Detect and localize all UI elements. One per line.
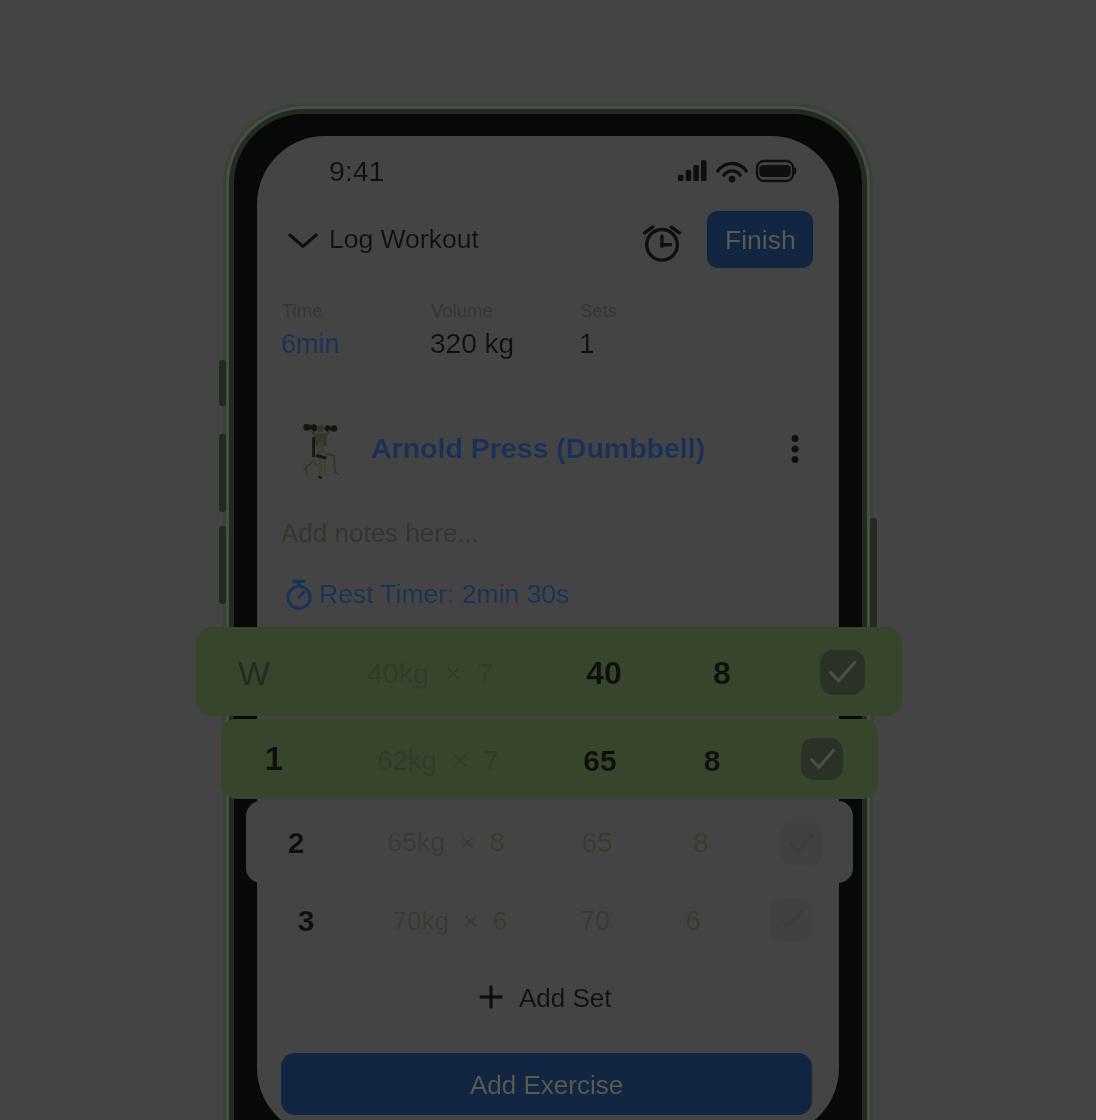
staticText: 320 kg [430,328,515,359]
staticText: 8 [667,655,777,691]
button[interactable] [246,801,853,883]
staticText: 8 [657,744,767,778]
staticText: 40 [549,655,659,691]
staticText: Add notes here... [281,518,480,547]
button[interactable] [221,719,878,799]
staticText: 6min [281,329,340,359]
staticText: 9:41 [329,155,385,187]
button[interactable]: Finish [707,211,813,268]
staticText: 70 [540,906,650,936]
button[interactable]: Rest Timer: 2min 30s [282,577,570,611]
staticText: Arnold Press (Dumbbell) [371,432,706,464]
staticText: Rest Timer: 2min 30s [319,579,570,609]
button[interactable] [196,627,902,716]
staticText: Sets [580,300,618,321]
staticText: 1 [579,328,595,359]
staticText: W [209,654,299,692]
button[interactable]: Add Set [478,978,1096,1016]
staticText: 65 [542,827,652,858]
button[interactable]: Set completed [820,650,865,695]
button[interactable]: Rest timer settings [639,218,685,264]
staticText: Volume [431,300,493,321]
staticText: Finish [725,225,796,255]
button[interactable]: Add Exercise [281,1053,812,1115]
button[interactable]: Arnold Press (Dumbbell) [371,432,706,464]
staticText: 3 [261,904,351,938]
button[interactable]: Set completed [801,738,843,780]
staticText: 65kg × 8 [311,827,581,857]
staticText: 1 [229,740,319,777]
staticText: 65 [545,744,655,778]
button[interactable] [257,883,839,957]
button[interactable]: Collapse workout [287,222,319,256]
button[interactable]: Exercise options [775,429,815,469]
staticText: Add Exercise [470,1070,624,1099]
staticText: Add Set [519,983,612,1012]
button[interactable]: Add notes here... [281,518,480,547]
staticText: Time [282,300,323,321]
staticText: Log Workout [329,224,479,254]
staticText: 2 [251,826,341,860]
staticText: 70kg × 6 [320,906,580,935]
staticText: 8 [646,827,756,858]
